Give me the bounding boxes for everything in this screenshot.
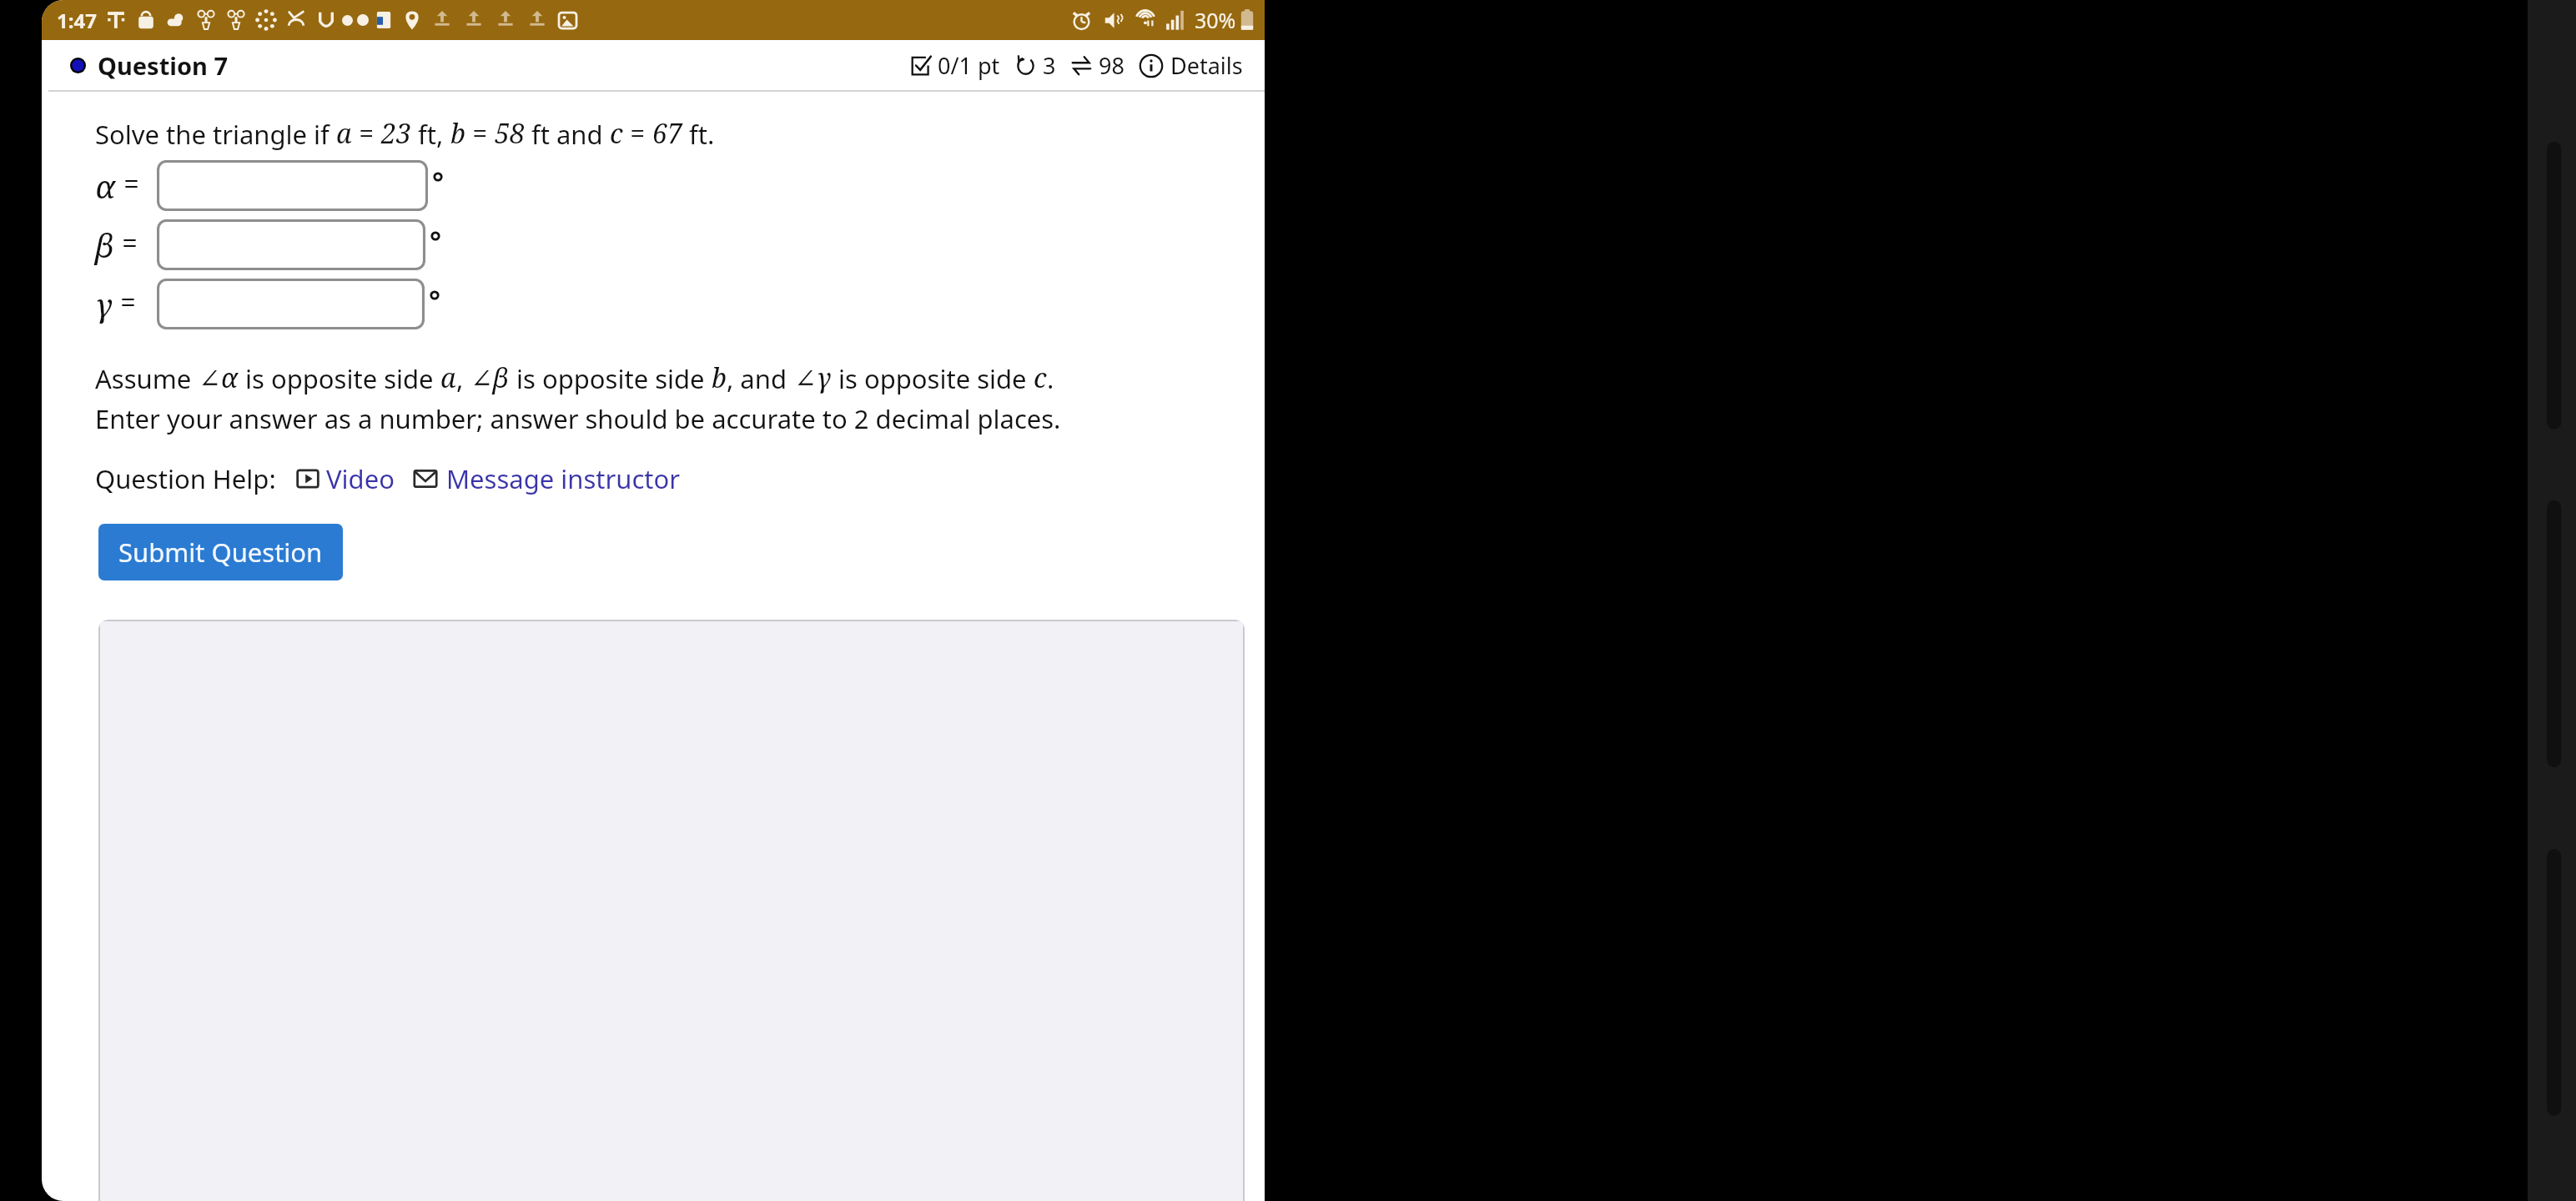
other: Message instructor	[413, 466, 438, 491]
staticText: c	[1034, 359, 1047, 396]
button[interactable]: Details	[1139, 50, 1243, 81]
staticText: is opposite side	[239, 361, 440, 396]
staticText: ft and	[525, 117, 610, 152]
staticText: 1:47	[57, 7, 97, 34]
staticText: Enter your answer as a number; answer sh…	[95, 401, 1061, 436]
staticText: 58	[495, 115, 525, 152]
staticText: 3	[1043, 50, 1056, 81]
button[interactable]	[157, 160, 428, 211]
button[interactable]: 98	[1070, 50, 1124, 81]
staticText: is opposite side	[832, 361, 1034, 396]
button[interactable]: Message instructor	[413, 461, 681, 496]
staticText: Message instructor	[446, 461, 681, 496]
staticText: ∠γ	[794, 359, 832, 396]
staticText: =	[122, 224, 138, 262]
staticText: ft,	[411, 117, 450, 152]
staticText: c	[610, 115, 623, 152]
staticText: Question 7	[98, 49, 229, 82]
staticText: a	[336, 115, 352, 152]
staticText: =	[123, 164, 140, 203]
staticText: 67	[652, 115, 682, 152]
staticText: is opposite side	[510, 361, 712, 396]
staticText: Submit Question	[118, 535, 323, 570]
staticText: Assume	[95, 361, 199, 396]
staticText: ∠α	[199, 359, 239, 396]
button[interactable]	[157, 219, 425, 270]
staticText: =	[465, 115, 495, 152]
button[interactable]: Submit Question	[98, 524, 343, 580]
staticText: α	[95, 164, 116, 208]
staticText: =	[352, 115, 381, 152]
button[interactable]: 3	[1014, 50, 1056, 81]
staticText: b	[712, 359, 727, 396]
staticText: Video	[326, 461, 395, 496]
staticText: γ	[95, 283, 113, 326]
button[interactable]: 0/1 pt	[910, 50, 1000, 81]
staticText: ∠β	[470, 359, 510, 396]
staticText: =	[120, 283, 137, 321]
button[interactable]: Video	[296, 461, 395, 496]
other: Video	[296, 467, 319, 490]
staticText: a	[440, 359, 456, 396]
staticText: , and	[727, 361, 794, 396]
staticText: 0/1 pt	[938, 50, 1000, 81]
staticText: ,	[456, 361, 470, 396]
staticText: 23	[381, 115, 411, 152]
staticText: 30%	[1195, 6, 1236, 34]
staticText: .	[1047, 361, 1054, 396]
staticText: =	[623, 115, 652, 152]
staticText: b	[450, 115, 465, 152]
staticText: Solve the triangle if	[95, 117, 336, 152]
staticText: Question Help:	[95, 461, 276, 496]
button[interactable]	[157, 279, 425, 329]
staticText: β	[95, 224, 114, 267]
staticText: ft.	[682, 117, 715, 152]
staticText: 98	[1099, 50, 1124, 81]
staticText: Details	[1170, 50, 1243, 81]
